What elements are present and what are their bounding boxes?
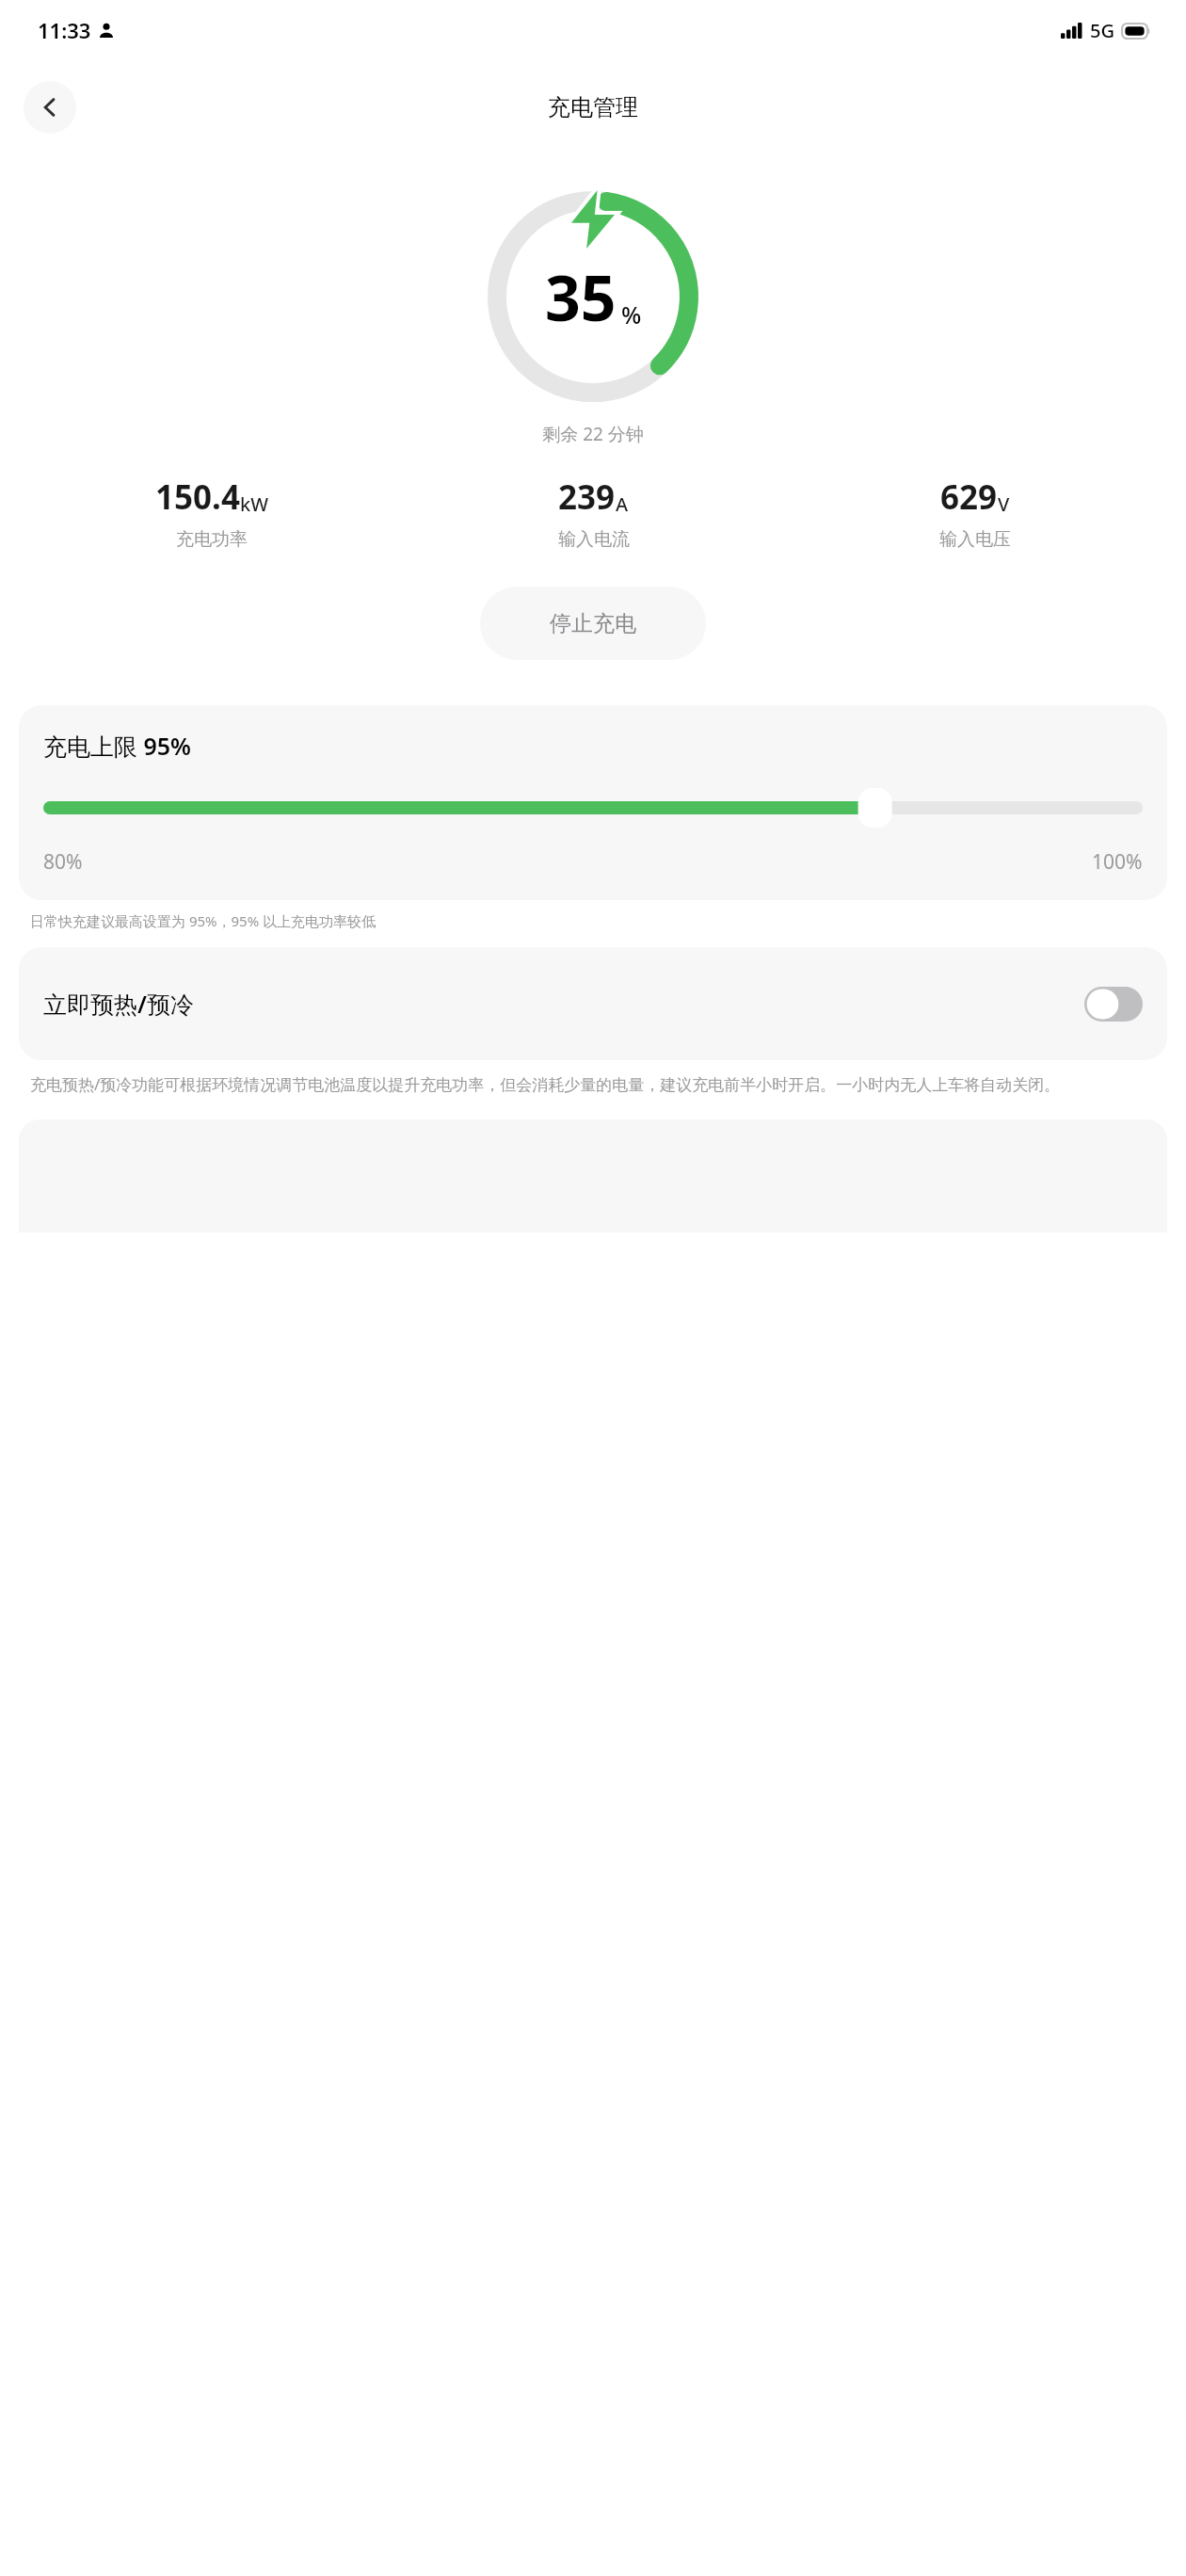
- staticText: 5G: [1090, 18, 1114, 43]
- staticText: 充电预热/预冷功能可根据环境情况调节电池温度以提升充电功率，但会消耗少量的电量，…: [30, 1073, 1061, 1095]
- staticText: A: [616, 491, 629, 517]
- button[interactable]: Back: [24, 81, 76, 134]
- staticText: 日常快充建议最高设置为 95%，95% 以上充电功率较低: [30, 911, 377, 930]
- button[interactable]: Preheat toggle: [1084, 987, 1143, 1022]
- staticText: 35: [545, 254, 617, 339]
- button[interactable]: 充电上限 95%: [19, 705, 1167, 900]
- staticText: %: [621, 298, 642, 330]
- staticText: V: [998, 491, 1010, 517]
- staticText: 充电管理: [548, 93, 638, 121]
- staticText: 输入电压: [939, 528, 1011, 551]
- staticText: 629: [940, 475, 998, 520]
- button[interactable]: 停止充电: [480, 587, 706, 660]
- staticText: 剩余 22 分钟: [0, 422, 1186, 446]
- staticText: 充电功率: [176, 528, 248, 551]
- staticText: 充电上限 95%: [43, 730, 191, 762]
- staticText: 100%: [1092, 848, 1143, 876]
- staticText: 80%: [43, 848, 83, 876]
- staticText: 11:33: [38, 16, 91, 44]
- staticText: 立即预热/预冷: [43, 988, 194, 1020]
- staticText: 停止充电: [550, 610, 636, 637]
- staticText: 239: [558, 475, 616, 520]
- staticText: kW: [240, 491, 268, 517]
- staticText: 150.4: [155, 475, 240, 520]
- button[interactable]: 立即预热/预冷: [19, 947, 1167, 1060]
- staticText: 输入电流: [558, 528, 630, 551]
